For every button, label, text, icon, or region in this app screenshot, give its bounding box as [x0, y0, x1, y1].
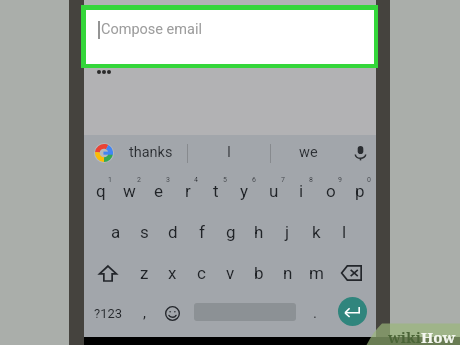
staticText: l [342, 222, 347, 242]
button[interactable]: w [115, 171, 144, 211]
button[interactable]: d [158, 212, 187, 252]
button[interactable]: a [101, 212, 130, 252]
button[interactable]: . [302, 293, 328, 333]
button[interactable]: c [187, 253, 216, 293]
staticText: h [254, 222, 264, 242]
staticText: c [197, 263, 206, 283]
staticText: I [227, 144, 231, 161]
button[interactable]: More options [97, 70, 112, 74]
button[interactable]: e [144, 171, 173, 211]
staticText: wiki [388, 327, 421, 345]
staticText: 2 [137, 176, 141, 184]
button[interactable]: v [216, 253, 245, 293]
button[interactable]: , [131, 293, 157, 333]
staticText: g [226, 222, 236, 242]
button[interactable]: Voice input [351, 144, 369, 162]
staticText: x [168, 263, 177, 283]
button[interactable]: x [158, 253, 187, 293]
staticText: n [283, 263, 293, 283]
staticText: a [111, 222, 121, 242]
staticText: w [123, 181, 136, 201]
staticText: we [299, 144, 318, 161]
staticText: 6 [252, 176, 256, 184]
staticText: 4 [194, 176, 198, 184]
staticText: , [143, 304, 146, 322]
staticText: 0 [367, 176, 371, 184]
staticText: . [313, 304, 317, 322]
staticText: 7 [281, 176, 285, 184]
button[interactable]: u [259, 171, 288, 211]
button[interactable]: p [345, 171, 374, 211]
staticText: thanks [129, 144, 173, 161]
button[interactable]: t [201, 171, 230, 211]
staticText: 5 [223, 176, 227, 184]
staticText: How [421, 327, 456, 345]
staticText: u [269, 181, 279, 201]
button[interactable]: ?123 [88, 293, 128, 333]
staticText: f [199, 222, 205, 242]
staticText: o [326, 181, 336, 201]
button[interactable]: Emoji [159, 293, 185, 333]
button[interactable]: s [130, 212, 159, 252]
button[interactable]: I [199, 135, 259, 169]
staticText: k [312, 222, 321, 242]
staticText: r [185, 181, 191, 201]
staticText: s [140, 222, 149, 242]
staticText: y [240, 181, 249, 201]
button[interactable]: m [302, 253, 331, 293]
staticText: 1 [108, 176, 112, 184]
staticText: j [285, 222, 290, 242]
button[interactable]: n [273, 253, 302, 293]
staticText: d [168, 222, 178, 242]
button[interactable]: k [302, 212, 331, 252]
staticText: Compose email [101, 21, 202, 38]
button[interactable]: Enter [338, 297, 367, 326]
button[interactable]: j [273, 212, 302, 252]
staticText: p [355, 181, 365, 201]
button[interactable]: h [244, 212, 273, 252]
staticText: b [254, 263, 264, 283]
button[interactable]: z [130, 253, 159, 293]
button[interactable]: Google [94, 143, 114, 163]
button[interactable]: f [187, 212, 216, 252]
staticText: ?123 [94, 306, 123, 321]
button[interactable]: l [330, 212, 359, 252]
button[interactable]: Backspace [330, 253, 373, 293]
button[interactable]: y [230, 171, 259, 211]
staticText: t [213, 181, 219, 201]
button[interactable]: Shift [86, 253, 129, 293]
button[interactable]: o [316, 171, 345, 211]
staticText: z [140, 263, 149, 283]
button[interactable]: thanks [121, 135, 181, 169]
button[interactable]: we [278, 135, 338, 169]
staticText: v [226, 263, 235, 283]
button[interactable]: Compose email [81, 5, 378, 68]
button[interactable]: i [287, 171, 316, 211]
staticText: i [299, 181, 304, 201]
button[interactable]: b [244, 253, 273, 293]
staticText: m [309, 263, 324, 283]
button[interactable]: g [216, 212, 245, 252]
staticText: 3 [166, 176, 170, 184]
button[interactable]: q [86, 171, 115, 211]
staticText: 8 [309, 176, 313, 184]
staticText: e [154, 181, 164, 201]
staticText: 9 [338, 176, 342, 184]
button[interactable]: r [173, 171, 202, 211]
staticText: q [96, 181, 106, 201]
